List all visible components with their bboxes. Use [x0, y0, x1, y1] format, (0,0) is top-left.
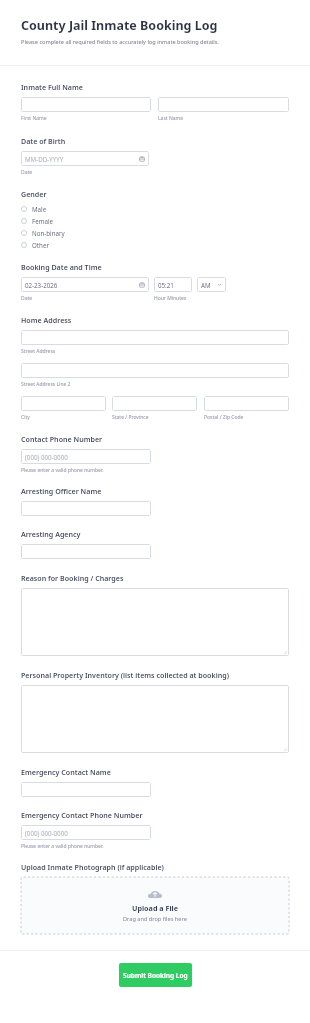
button[interactable]: Street Address	[21, 330, 289, 345]
button[interactable]: Street Address Line 2	[21, 363, 289, 378]
staticText: Arresting Officer Name	[21, 486, 102, 496]
staticText: Date	[21, 169, 33, 176]
button[interactable]: First Name	[21, 97, 151, 112]
staticText: Non-binary	[32, 229, 65, 237]
staticText: Female	[32, 217, 54, 225]
staticText: State / Province	[112, 414, 149, 421]
staticText: First Name	[21, 115, 47, 122]
staticText: Upload Inmate Photograph (if applicable)	[21, 862, 164, 872]
staticText: Date	[21, 295, 33, 302]
button[interactable]: AM or PM	[197, 277, 226, 292]
button[interactable]: Female	[21, 215, 289, 227]
staticText: AM	[201, 281, 211, 289]
staticText: (000) 000-0000	[25, 829, 68, 837]
staticText: Arresting Agency	[21, 529, 81, 539]
staticText: City	[21, 414, 30, 421]
button[interactable]: Hour and minutes	[154, 277, 192, 292]
button[interactable]: Emergency Contact Name	[21, 782, 151, 797]
staticText: Booking Date and Time	[21, 262, 102, 272]
button[interactable]: Emergency Contact Phone Number	[21, 825, 151, 840]
staticText: 05:21	[158, 281, 174, 289]
staticText: Other	[32, 241, 49, 249]
staticText: Submit Booking Log	[123, 971, 188, 980]
staticText: Last Name	[158, 115, 184, 122]
button[interactable]: Other	[21, 239, 289, 251]
staticText: 02-23-2026	[25, 281, 58, 289]
button[interactable]: Last Name	[158, 97, 289, 112]
button[interactable]: Arresting Agency	[21, 544, 151, 559]
staticText: Contact Phone Number	[21, 434, 103, 444]
staticText: Date of Birth	[21, 136, 66, 146]
staticText: Upload a File	[132, 903, 179, 913]
staticText: Please enter a valid phone number.	[21, 467, 104, 474]
staticText: Gender	[21, 189, 47, 199]
button[interactable]: Upload a file	[21, 877, 289, 934]
button[interactable]: Personal Property Inventory	[21, 685, 289, 753]
staticText: County Jail Inmate Booking Log	[21, 17, 218, 34]
other: Open calendar	[139, 156, 145, 162]
other: Select AM or PM	[217, 282, 222, 287]
button[interactable]: City	[21, 396, 106, 411]
staticText: Drag and drop files here	[123, 915, 187, 923]
staticText: Reason for Booking / Charges	[21, 573, 124, 583]
staticText: Hour Minutes	[154, 295, 187, 302]
staticText: Street Address	[21, 348, 56, 355]
other: Open calendar	[139, 282, 145, 288]
staticText: Please enter a valid phone number.	[21, 843, 104, 850]
button[interactable]: Date of Birth	[21, 151, 149, 166]
button[interactable]: Arresting Officer Name	[21, 501, 151, 516]
staticText: Male	[32, 205, 47, 213]
staticText: (000) 000-0000	[25, 453, 68, 461]
button[interactable]: Submit Booking Log	[119, 963, 192, 987]
button[interactable]: Postal / Zip Code	[204, 396, 289, 411]
button[interactable]: Male	[21, 203, 289, 215]
staticText: Emergency Contact Name	[21, 767, 111, 777]
staticText: Street Address Line 2	[21, 381, 71, 388]
button[interactable]: Booking date	[21, 277, 149, 292]
staticText: Emergency Contact Phone Number	[21, 810, 143, 820]
button[interactable]: Contact Phone Number	[21, 449, 151, 464]
staticText: Inmate Full Name	[21, 82, 83, 92]
button[interactable]: State / Province	[112, 396, 197, 411]
button[interactable]: Reason for Booking / Charges	[21, 588, 289, 656]
button[interactable]: Non-binary	[21, 227, 289, 239]
staticText: Please complete all required fields to a…	[21, 38, 219, 46]
staticText: MM-DD-YYYY	[25, 155, 64, 163]
staticText: Personal Property Inventory (list items …	[21, 670, 229, 680]
staticText: Postal / Zip Code	[204, 414, 244, 421]
staticText: Home Address	[21, 315, 72, 325]
